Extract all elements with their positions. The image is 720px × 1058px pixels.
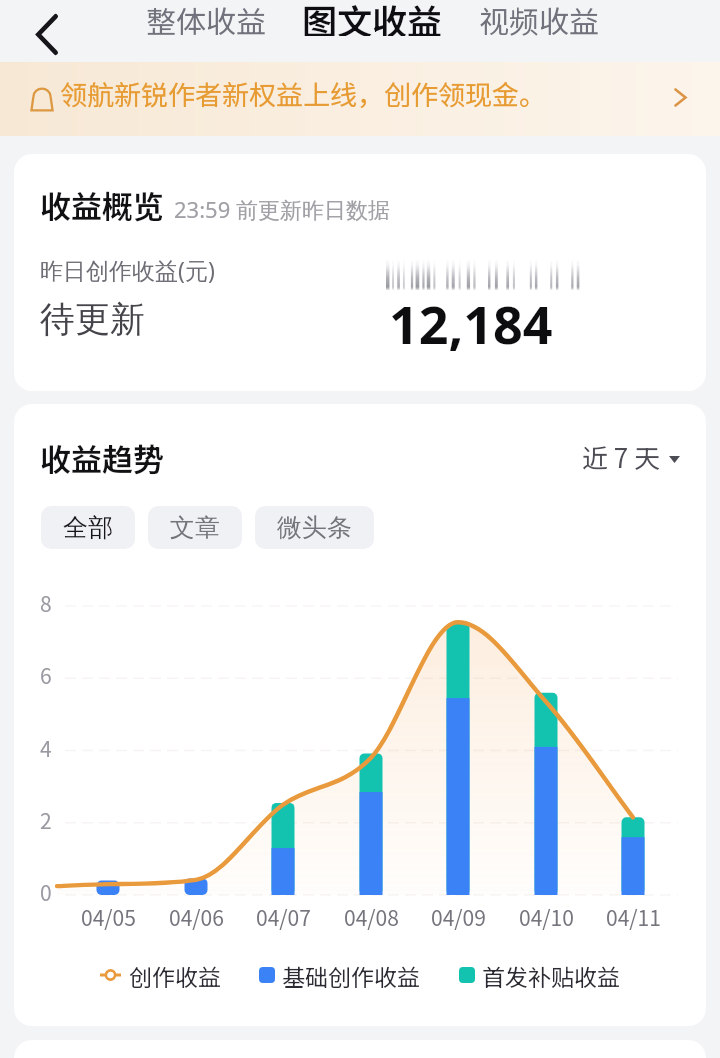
staticText: 近 7 天 xyxy=(582,438,661,476)
button[interactable]: 首发补贴收益 xyxy=(459,955,620,995)
staticText: 6 xyxy=(40,660,52,690)
staticText: 04/07 xyxy=(256,902,311,932)
button[interactable]: 创作收益 xyxy=(100,955,221,995)
staticText: 基础创作收益 xyxy=(282,959,420,992)
other: More xyxy=(674,88,687,107)
staticText: 昨日创作收益(元) xyxy=(40,254,215,285)
staticText: 微头条 xyxy=(277,512,352,543)
button[interactable]: 近 7 天 xyxy=(578,434,684,480)
staticText: 04/05 xyxy=(81,902,136,932)
button[interactable]: 图文收益 xyxy=(284,0,461,46)
staticText: 领航新锐作者新权益上线，创作领现金。 xyxy=(60,74,546,113)
button[interactable]: 整体收益 xyxy=(128,0,284,50)
button[interactable]: 微头条 xyxy=(255,506,374,549)
staticText: 全部 xyxy=(63,512,113,543)
staticText: 04/11 xyxy=(606,902,661,932)
staticText: 12,184 xyxy=(389,288,553,359)
staticText: 收益趋势 xyxy=(40,435,164,480)
button[interactable]: 全部 xyxy=(41,506,135,549)
staticText: 视频收益 xyxy=(479,0,599,40)
staticText: 04/10 xyxy=(519,902,574,932)
button[interactable]: 领航新锐作者新权益上线，创作领现金。 xyxy=(0,62,720,136)
staticText: 文章 xyxy=(170,512,220,543)
button[interactable]: 文章 xyxy=(148,506,242,549)
staticText: 待更新 xyxy=(40,297,145,341)
staticText: 首发补贴收益 xyxy=(482,959,620,992)
button[interactable]: 基础创作收益 xyxy=(259,955,420,995)
staticText: 04/09 xyxy=(431,902,486,932)
button[interactable]: 视频收益 xyxy=(461,0,617,50)
staticText: 8 xyxy=(40,588,52,618)
staticText: 图文收益 xyxy=(302,0,443,36)
staticText: 23:59 前更新昨日数据 xyxy=(174,194,390,224)
staticText: 收益概览 xyxy=(40,182,164,227)
staticText: 创作收益 xyxy=(129,959,221,992)
staticText: 04/08 xyxy=(344,902,399,932)
staticText: 04/06 xyxy=(169,902,224,932)
staticText: 2 xyxy=(40,805,52,835)
staticText: 整体收益 xyxy=(146,0,266,40)
staticText: 0 xyxy=(40,877,52,907)
button[interactable]: Back xyxy=(14,0,78,62)
staticText: 4 xyxy=(40,733,52,763)
